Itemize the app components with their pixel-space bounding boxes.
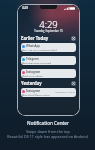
staticText: liked your photo <box>22 75 43 77</box>
staticText: Beautiful OS 11 style has appeared on An… <box>7 134 88 139</box>
staticText: Yesterday 2:16PM <box>55 90 75 93</box>
button[interactable]: Instagram <box>21 88 76 97</box>
button[interactable]: Clear notifications <box>71 36 76 41</box>
staticText: 4:29 <box>18 18 79 31</box>
staticText: Yesterday <box>21 80 42 86</box>
button[interactable]: Instagram <box>21 69 76 78</box>
staticText: Telegram <box>26 57 39 61</box>
staticText: Nice shot! Keep going <box>22 94 50 96</box>
staticText: Swipe down from the top <box>26 129 70 134</box>
staticText: Instagram <box>26 89 41 93</box>
button[interactable]: Telegram <box>21 56 76 65</box>
staticText: Notification Center <box>27 120 69 126</box>
staticText: Tuesday, September 15 <box>18 29 79 33</box>
staticText: Earlier Today <box>21 35 49 41</box>
staticText: Instagram <box>26 70 41 74</box>
staticText: New message received <box>22 62 51 64</box>
staticText: Hey, are you coming today? <box>22 49 57 51</box>
button[interactable]: Clear notifications <box>71 81 76 86</box>
staticText: 4:29 <box>22 6 28 10</box>
button[interactable]: WhatsApp <box>21 43 76 52</box>
staticText: WhatsApp <box>26 44 40 48</box>
